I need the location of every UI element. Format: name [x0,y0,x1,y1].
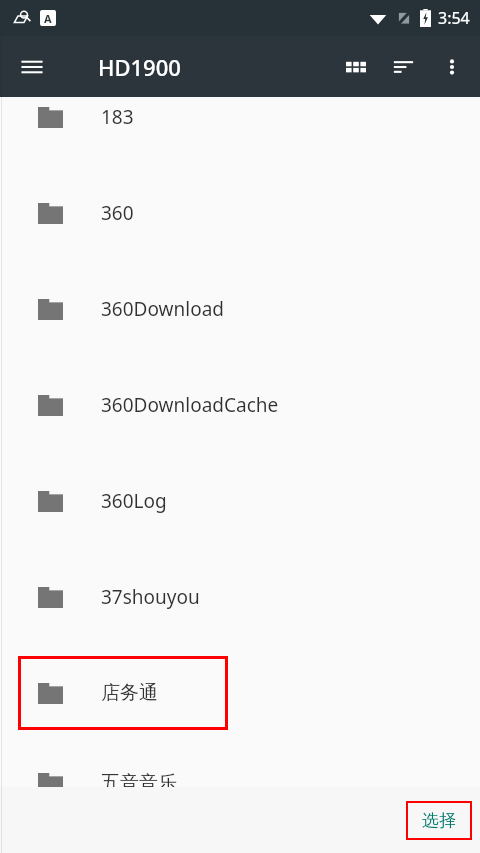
staticText: 183 [101,104,134,130]
button[interactable]: 183 [0,97,480,165]
button[interactable]: 360DownloadCache [0,357,480,453]
staticText: 37shouyou [101,584,200,610]
button[interactable]: 选择 [406,801,472,840]
staticText: 五音音乐 [101,771,177,795]
button[interactable]: More options [428,43,476,91]
button[interactable]: 店务通 [0,645,480,741]
button[interactable]: Grid view [332,43,380,91]
staticText: 360DownloadCache [101,392,279,418]
staticText: A [44,11,52,26]
button[interactable]: Sort [380,43,428,91]
staticText: 360Download [101,296,225,322]
staticText: 选择 [422,810,456,831]
button[interactable]: 360Download [0,261,480,357]
button[interactable]: 五音音乐 [0,741,480,825]
staticText: 店务通 [101,681,158,705]
button[interactable]: 360Log [0,453,480,549]
staticText: 360 [101,200,134,226]
staticText: 3:54 [438,7,470,29]
staticText: HD1900 [98,52,181,82]
button[interactable]: 37shouyou [0,549,480,645]
staticText: 360Log [101,488,167,514]
button[interactable]: 360 [0,165,480,261]
button[interactable]: Open navigation drawer [8,43,56,91]
